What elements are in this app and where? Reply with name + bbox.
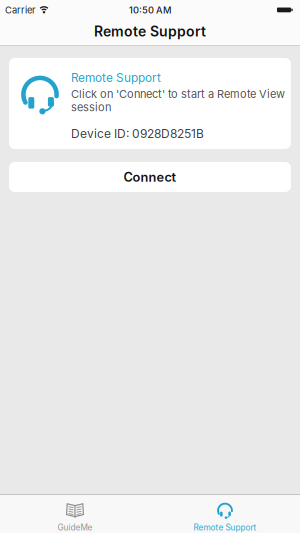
staticText: Remote Support (71, 70, 161, 85)
staticText: Click on 'Connect' to start a Remote Vie… (71, 87, 285, 101)
button[interactable]: GuideMe (0, 495, 150, 533)
staticText: session (71, 101, 111, 114)
staticText: Remote Support (94, 23, 206, 40)
staticText: Connect (123, 169, 176, 185)
staticText: Device ID: 0928D8251B (71, 126, 204, 141)
staticText: Carrier (5, 4, 36, 16)
button[interactable]: Remote Support (150, 495, 300, 533)
staticText: GuideMe (57, 522, 92, 532)
button[interactable]: Connect (9, 162, 291, 192)
staticText: 10:50 AM (129, 4, 171, 16)
staticText: Remote Support (193, 522, 256, 532)
